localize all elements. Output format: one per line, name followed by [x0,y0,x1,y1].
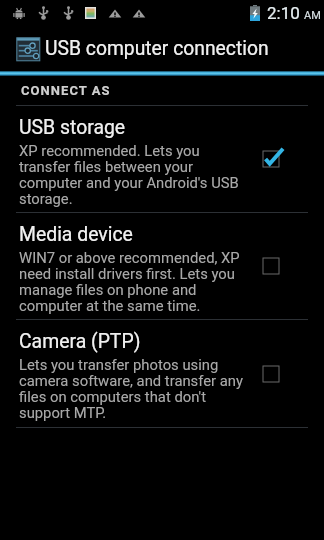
staticText: Lets you transfer photos using camera so… [19,356,248,422]
staticText: AM [304,9,321,22]
staticText: USB computer connection [45,37,269,60]
staticText: Media device [19,223,133,246]
staticText: USB storage [19,116,126,139]
staticText: WIN7 or above recommended, XP need insta… [19,249,248,315]
staticText: CONNECT AS [21,83,111,98]
button[interactable]: Settings [0,26,324,71]
button[interactable]: Media device [0,213,324,319]
button[interactable]: USB storage [0,106,324,212]
staticText: XP recommended. Lets you transfer files … [19,142,248,208]
button[interactable]: Not selected [261,256,281,276]
button[interactable]: Selected [261,149,281,169]
button[interactable]: Camera (PTP) [0,320,324,427]
staticText: 2:10 [267,3,300,23]
other: Settings [14,35,42,63]
button[interactable]: Not selected [261,364,281,384]
staticText: Camera (PTP) [19,330,141,353]
